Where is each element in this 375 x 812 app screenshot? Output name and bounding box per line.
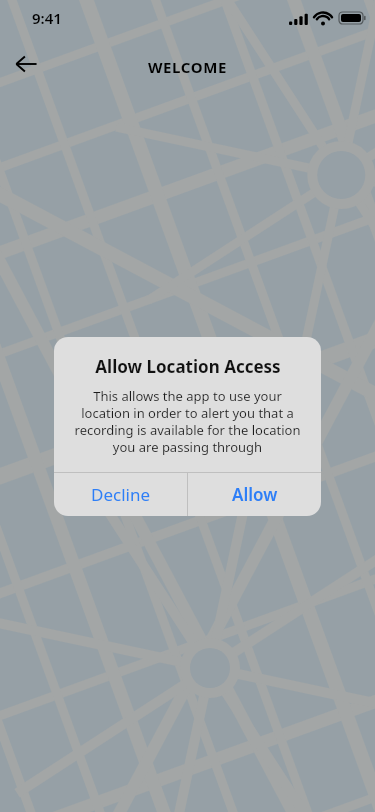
button[interactable]: Allow <box>188 473 321 516</box>
staticText: 9:41 <box>32 8 62 28</box>
button[interactable]: Decline <box>54 473 187 516</box>
staticText: Allow Location Access <box>95 355 281 378</box>
staticText: This allows the app to use your location… <box>70 387 305 456</box>
button[interactable]: Back <box>6 44 46 84</box>
staticText: Allow <box>232 483 278 506</box>
staticText: Decline <box>91 483 151 506</box>
staticText: WELCOME <box>148 57 227 77</box>
